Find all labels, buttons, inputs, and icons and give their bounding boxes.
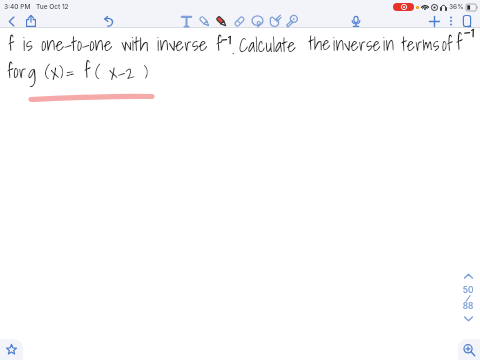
button[interactable]: Eraser (230, 13, 248, 28)
button[interactable]: Pen tool (195, 13, 213, 28)
staticText: f (84, 55, 91, 87)
staticText: 88 (461, 301, 475, 311)
button[interactable]: More options (443, 13, 459, 28)
staticText: in (383, 30, 395, 59)
staticText: the (309, 29, 331, 58)
staticText: Tue Oct 12 (36, 3, 69, 11)
staticText: . (232, 32, 235, 63)
staticText: f (456, 27, 463, 59)
button[interactable]: Page thumbnails (459, 13, 475, 28)
button[interactable]: Share (23, 13, 39, 28)
staticText: Calculate (239, 30, 297, 61)
staticText: terms (402, 30, 440, 59)
button[interactable]: Text tool (177, 13, 195, 28)
button[interactable]: Next page (460, 311, 476, 327)
button[interactable]: Highlighter (212, 13, 230, 28)
staticText: for (7, 56, 27, 87)
button[interactable]: Undo (100, 13, 116, 28)
button[interactable]: Add (426, 13, 442, 28)
staticText: ( x-2 ) (95, 57, 149, 88)
staticText: 3:40 PM (4, 3, 31, 11)
staticText: 50 (461, 285, 475, 295)
button[interactable]: Shape tool (282, 13, 300, 28)
button[interactable]: Bookmark (0, 339, 23, 360)
staticText: of (442, 30, 454, 59)
button[interactable]: Hand tool (265, 13, 283, 28)
button[interactable]: Back (3, 13, 19, 28)
staticText: = (66, 56, 75, 87)
button[interactable]: Record audio (348, 13, 364, 28)
button[interactable]: Lasso select (248, 13, 266, 28)
button[interactable]: Previous page (460, 268, 476, 284)
staticText: 36% (449, 3, 464, 11)
staticText: inverse (333, 30, 381, 59)
button[interactable]: Zoom (458, 339, 480, 360)
staticText: g (x) (28, 57, 64, 88)
staticText: f is one-to-one with inverse f (8, 29, 223, 60)
